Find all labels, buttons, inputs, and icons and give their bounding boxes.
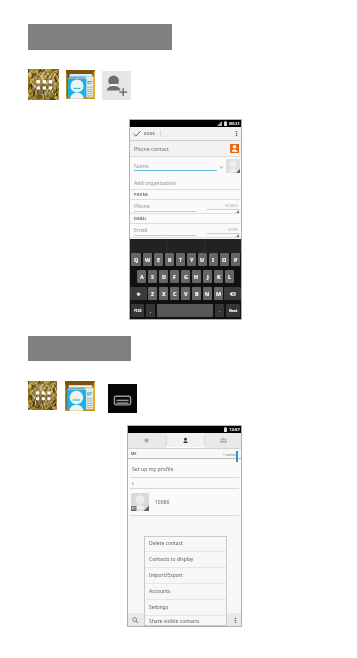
staticText: B (195, 290, 199, 297)
button[interactable]: F (170, 270, 179, 283)
staticText: Phone contact (134, 145, 169, 152)
button[interactable]: K (214, 270, 223, 283)
button[interactable]: Share visible contacts (144, 616, 227, 626)
button[interactable]: C (170, 287, 179, 300)
button[interactable]: Y (187, 253, 196, 266)
staticText: Import/Export (149, 572, 183, 579)
button[interactable]: O (220, 253, 229, 266)
staticText: 1 contact (223, 452, 238, 456)
button[interactable]: Q (131, 253, 141, 266)
staticText: F (173, 273, 176, 280)
button[interactable]: N (203, 287, 212, 300)
staticText: D (162, 273, 166, 280)
staticText: Contacts to display (149, 556, 194, 563)
button[interactable]: Z (148, 287, 157, 300)
button[interactable]: More options (231, 127, 242, 140)
button[interactable]: H (192, 270, 201, 283)
staticText: DONE (144, 131, 155, 136)
button[interactable]: P (231, 253, 240, 266)
staticText: E (157, 256, 161, 263)
button[interactable]: V (181, 287, 190, 300)
button[interactable]: W (143, 253, 152, 266)
button[interactable]: L (225, 270, 234, 283)
button[interactable]: Backspace (224, 287, 241, 300)
staticText: HOME (228, 228, 239, 232)
staticText: Accounts (149, 588, 171, 595)
button[interactable]: E (154, 253, 163, 266)
button[interactable]: Add photo (226, 159, 240, 173)
button[interactable]: Set up my profile (127, 459, 242, 477)
staticText: H (194, 273, 199, 280)
staticText: M (216, 290, 222, 297)
staticText: A (140, 273, 144, 280)
button[interactable]: D (159, 270, 168, 283)
button[interactable]: Add organization (129, 175, 242, 189)
button[interactable]: J (203, 270, 212, 283)
button[interactable]: U (198, 253, 207, 266)
button[interactable]: ?123 (131, 304, 144, 317)
staticText: Y (190, 256, 194, 263)
staticText: , (150, 308, 152, 313)
button[interactable]: B (192, 287, 201, 300)
staticText: T (179, 256, 183, 263)
staticText: I (212, 256, 215, 263)
button[interactable]: Suggestion (129, 239, 166, 253)
staticText: N (205, 290, 210, 297)
staticText: Name (134, 162, 149, 169)
button[interactable]: G (181, 270, 190, 283)
button[interactable]: Phone contact (129, 141, 242, 156)
button[interactable]: Add contact (102, 71, 131, 100)
button[interactable]: Accounts (144, 584, 227, 599)
button[interactable]: I (209, 253, 218, 266)
staticText: MOBILE (225, 204, 239, 208)
button[interactable]: More options (228, 613, 242, 627)
button[interactable]: Next (226, 304, 240, 317)
button[interactable]: X (159, 287, 168, 300)
button[interactable]: , (146, 304, 155, 317)
staticText: O (222, 256, 227, 263)
staticText: Set up my profile (132, 465, 174, 472)
button[interactable]: M (214, 287, 223, 300)
button[interactable]: Shift (130, 287, 147, 300)
staticText: Z (151, 290, 155, 297)
staticText: Add organization (134, 179, 176, 186)
staticText: ?123 (134, 308, 142, 313)
button[interactable]: Search (127, 613, 144, 627)
staticText: Settings (149, 604, 169, 611)
staticText: 6 (132, 481, 135, 486)
staticText: Email (134, 226, 148, 233)
button[interactable]: A (137, 270, 146, 283)
staticText: 00:21 (229, 120, 240, 126)
button[interactable]: T (176, 253, 185, 266)
staticText: R (168, 256, 172, 263)
staticText: Next (229, 308, 238, 313)
staticText: G (184, 273, 188, 280)
button[interactable]: Delete contact (144, 536, 227, 551)
button[interactable]: Settings (144, 600, 227, 615)
button[interactable]: . (215, 304, 224, 317)
button[interactable]: Contacts to display (144, 552, 227, 567)
staticText: L (228, 273, 232, 280)
button[interactable]: Email (129, 224, 242, 237)
staticText: . (219, 308, 221, 313)
staticText: EMAIL (134, 216, 147, 221)
button[interactable]: DONE (129, 127, 160, 140)
button[interactable]: Phone (129, 200, 242, 213)
staticText: J (207, 273, 209, 280)
button[interactable]: 10086 (127, 489, 242, 515)
button[interactable]: Contacts (166, 433, 204, 448)
button[interactable]: Menu (108, 384, 137, 413)
button[interactable]: S (148, 270, 157, 283)
button[interactable]: R (165, 253, 174, 266)
staticText: U (200, 256, 205, 263)
button[interactable]: Favorites (127, 433, 166, 448)
button[interactable]: Import/Export (144, 568, 227, 583)
staticText: 10086 (155, 499, 170, 506)
staticText: 12:57 (229, 426, 240, 432)
staticText: P (234, 256, 238, 263)
button[interactable]: Groups (204, 433, 242, 448)
staticText: Q (134, 256, 139, 263)
button[interactable]: Suggestion (205, 239, 242, 253)
